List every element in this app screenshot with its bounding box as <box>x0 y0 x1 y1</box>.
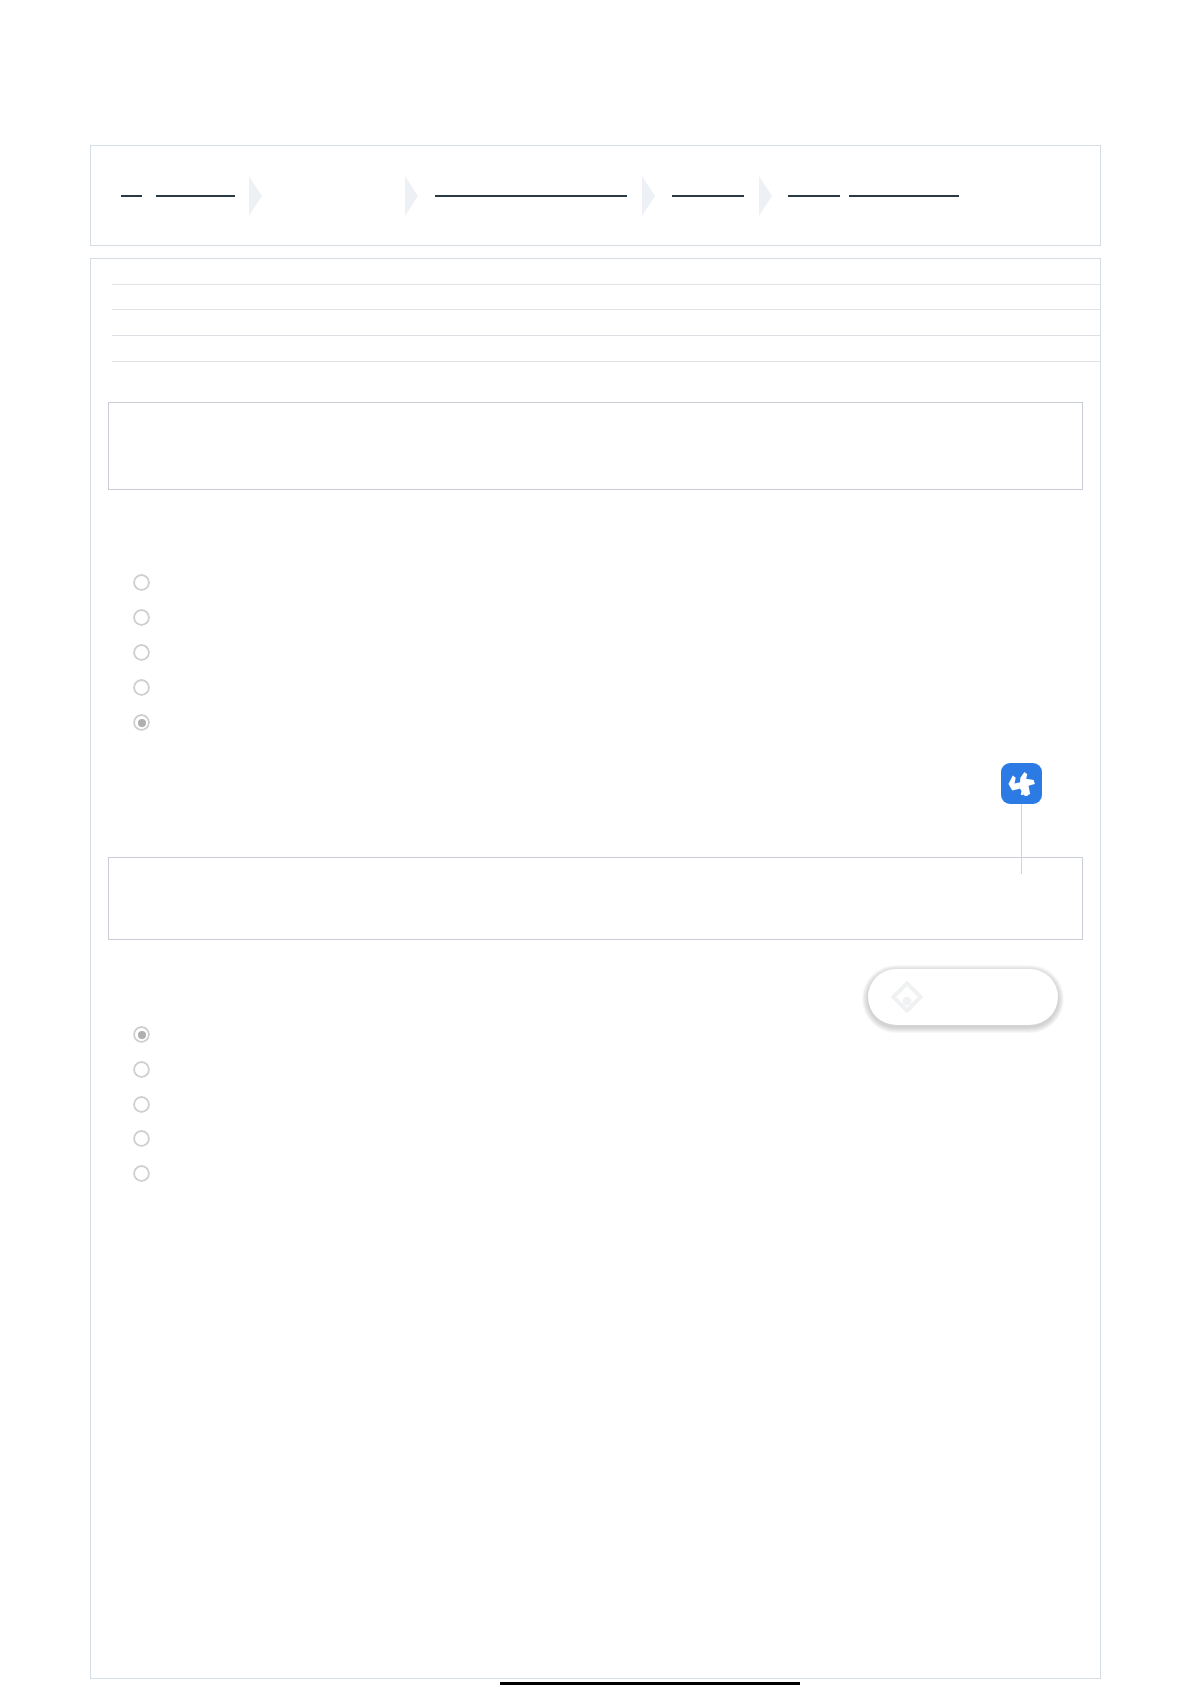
button[interactable] <box>121 189 235 203</box>
button[interactable] <box>90 606 1101 628</box>
button[interactable] <box>90 1093 1101 1115</box>
button[interactable] <box>108 402 1083 490</box>
button[interactable]: Sign language accessibility <box>1001 763 1042 804</box>
button[interactable] <box>90 641 1101 663</box>
button[interactable] <box>90 1023 1101 1045</box>
button[interactable] <box>108 857 1083 940</box>
button[interactable] <box>90 711 1101 733</box>
button[interactable] <box>90 571 1101 593</box>
button[interactable] <box>90 1162 1101 1184</box>
button[interactable] <box>90 1058 1101 1080</box>
button[interactable] <box>90 676 1101 698</box>
button[interactable] <box>868 969 1058 1025</box>
button[interactable] <box>90 1127 1101 1149</box>
